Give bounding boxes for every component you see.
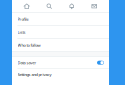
staticText: Lists	[17, 29, 25, 35]
staticText: Who to follow	[17, 42, 40, 48]
button[interactable]: Home	[15, 0, 38, 12]
button[interactable]: Search	[38, 0, 60, 12]
staticText: Profile	[17, 16, 28, 22]
button[interactable]: Lists	[12, 26, 109, 38]
button[interactable]: Data saver	[12, 57, 109, 68]
button[interactable]: Profile	[12, 13, 109, 25]
button[interactable]: Who to follow	[12, 39, 109, 51]
staticText: Data saver	[17, 60, 36, 65]
staticText: Settings and privacy	[17, 72, 51, 77]
button[interactable]: Messages	[83, 0, 105, 12]
button[interactable]: Notifications	[60, 0, 83, 12]
button[interactable]: Settings and privacy	[12, 69, 109, 80]
